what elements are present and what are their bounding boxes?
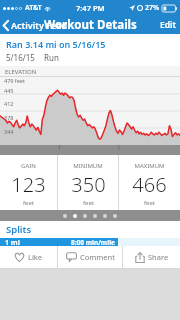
button[interactable]: GAIN [0, 155, 57, 210]
staticText: feet [144, 199, 155, 207]
staticText: 1 mi [5, 238, 20, 246]
button[interactable]: Comment [58, 246, 122, 268]
staticText: 466 [132, 171, 167, 198]
staticText: 378 [4, 114, 14, 121]
button[interactable]: Splits [0, 221, 180, 238]
staticText: 123 [11, 171, 46, 198]
staticText: 7:47 PM [76, 3, 105, 13]
staticText: feet [83, 199, 94, 207]
staticText: Edit [160, 19, 176, 31]
staticText: GAIN [21, 162, 36, 170]
button[interactable]: Ran 3.14 mi on 5/16/15 [0, 34, 180, 66]
staticText: Workout Details [44, 17, 137, 33]
staticText: Comment [80, 252, 115, 262]
staticText: Ran 3.14 mi on 5/16/15 [6, 38, 106, 50]
staticText: Splits [6, 223, 32, 236]
staticText: 8:00 min/mile [71, 238, 115, 246]
staticText: 350 [71, 171, 106, 198]
staticText: MINIMUM [73, 162, 103, 170]
staticText: 412 [4, 100, 14, 107]
staticText: Run [44, 52, 59, 63]
staticText: 479 feet [4, 77, 25, 84]
staticText: Like [28, 252, 43, 262]
staticText: MAXIMUM [134, 162, 165, 170]
button[interactable]: MAXIMUM [119, 155, 180, 210]
button[interactable]: Activity Feed [0, 17, 70, 33]
staticText: AT&T [25, 3, 42, 13]
staticText: 27% [145, 3, 160, 13]
button[interactable]: Share [123, 246, 180, 268]
staticText: Share [148, 252, 169, 262]
staticText: ELEVATION [5, 68, 37, 76]
staticText: feet [23, 199, 34, 207]
staticText: 5/16/15 [6, 52, 35, 63]
button[interactable]: Edit [156, 16, 180, 34]
staticText: 344 [4, 128, 14, 135]
staticText: 445 [4, 87, 14, 94]
staticText: Activity Feed [11, 19, 68, 31]
button[interactable]: MINIMUM [58, 155, 118, 210]
button[interactable]: Like [0, 246, 57, 268]
